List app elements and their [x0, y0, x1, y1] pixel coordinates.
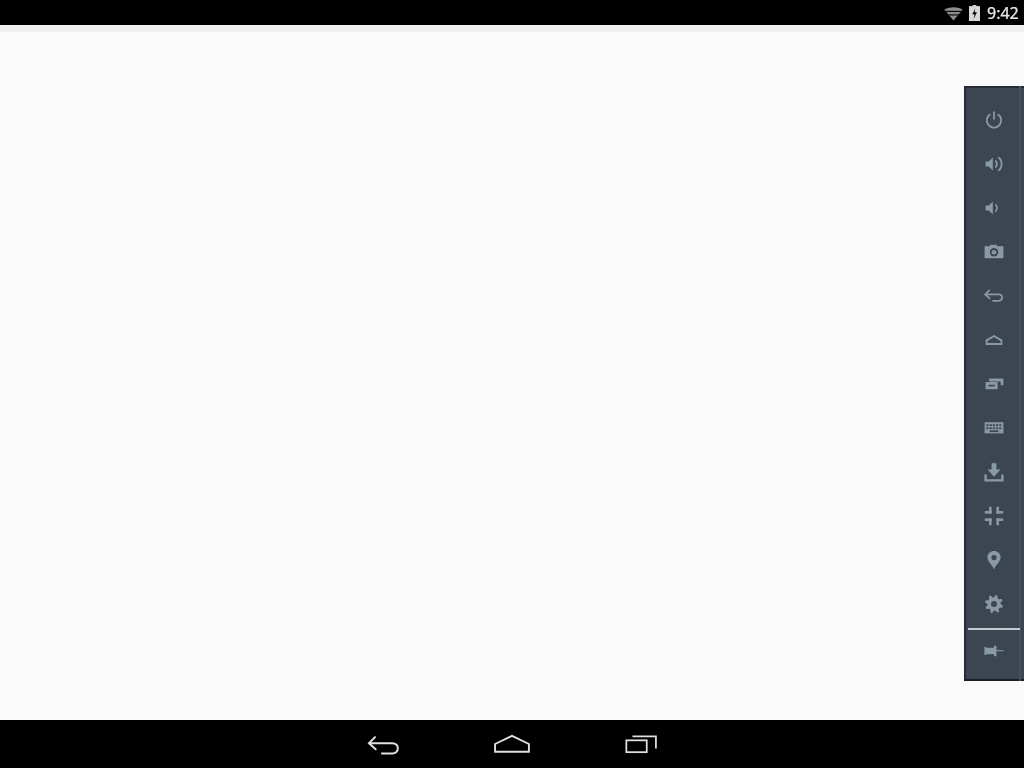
button[interactable]: Rotate — [964, 274, 1024, 318]
button[interactable]: Location — [964, 538, 1024, 582]
button[interactable]: Download — [964, 450, 1024, 494]
button[interactable]: Zoom — [964, 494, 1024, 538]
button[interactable]: Recent apps — [619, 720, 667, 768]
button[interactable]: Home — [964, 318, 1024, 362]
button[interactable]: Overview — [964, 362, 1024, 406]
button[interactable]: Home — [488, 720, 536, 768]
button[interactable]: Pin toolbar — [964, 629, 1024, 673]
button[interactable]: Volume up — [964, 142, 1024, 186]
button[interactable]: Screenshot — [964, 230, 1024, 274]
button[interactable]: Back — [360, 720, 408, 768]
button[interactable]: Settings — [964, 582, 1024, 626]
button[interactable]: Power — [964, 98, 1024, 142]
staticText: 9:42 — [987, 2, 1019, 24]
button[interactable]: Keyboard — [964, 406, 1024, 450]
button[interactable]: Volume down — [964, 186, 1024, 230]
